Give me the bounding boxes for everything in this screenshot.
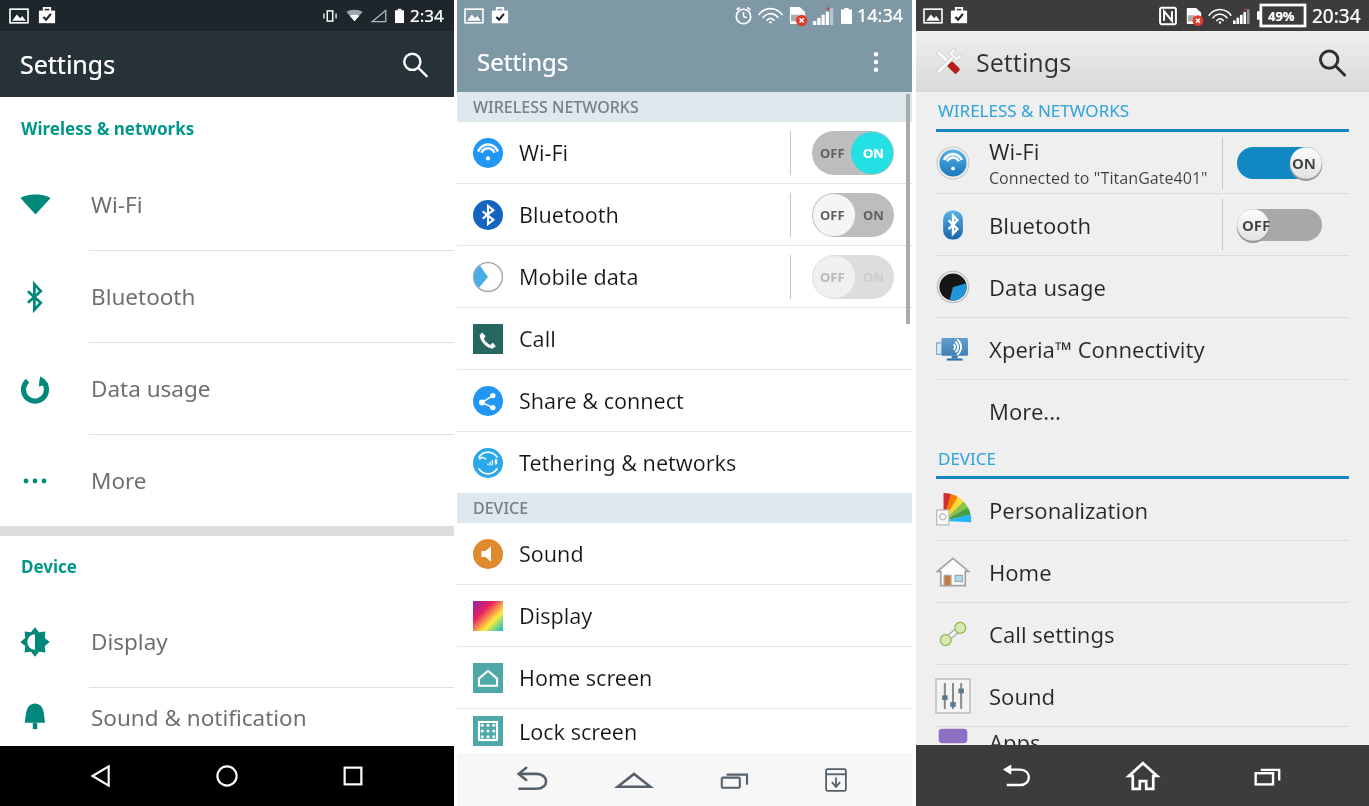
button[interactable]: More... [916, 380, 1369, 441]
button[interactable]: Toggle Mobile data [812, 255, 894, 299]
button[interactable]: Toggle Bluetooth [812, 193, 894, 237]
staticText: Mobile data [519, 262, 639, 291]
button[interactable]: Display [0, 596, 454, 687]
staticText: OFF [820, 268, 845, 286]
button[interactable]: Recents [1243, 751, 1293, 801]
staticText: More... [989, 396, 1062, 426]
staticText: 2:34 [410, 4, 444, 27]
staticText: OFF [1242, 215, 1271, 235]
staticText: Settings [20, 47, 116, 81]
button[interactable]: Back [76, 751, 126, 801]
staticText: ON [863, 144, 884, 162]
staticText: Home screen [519, 663, 653, 692]
button[interactable]: Bluetooth [916, 194, 1369, 255]
staticText: Call [519, 324, 556, 353]
button[interactable]: Data usage [916, 256, 1369, 317]
staticText: Sound [519, 539, 584, 568]
staticText: ON [1292, 153, 1317, 173]
staticText: ON [863, 268, 884, 286]
staticText: Sound & notification [91, 702, 307, 733]
staticText: OFF [820, 206, 845, 224]
staticText: Data usage [91, 373, 211, 404]
button[interactable]: Data usage [0, 343, 454, 434]
staticText: More [91, 465, 147, 496]
staticText: Wi-Fi [519, 138, 569, 167]
button[interactable]: More [0, 435, 454, 526]
button[interactable]: Back [508, 755, 558, 805]
button[interactable]: Toggle Bluetooth [1237, 209, 1322, 241]
button[interactable]: Sound [457, 523, 912, 584]
staticText: Device [21, 555, 77, 578]
button[interactable]: Personalization [916, 479, 1369, 540]
button[interactable]: Tethering & networks [457, 432, 912, 493]
staticText: ON [863, 206, 884, 224]
staticText: Display [91, 626, 168, 657]
button[interactable]: More options [856, 42, 896, 82]
staticText: Xperia™ Connectivity [989, 334, 1205, 364]
button[interactable]: Recents [328, 751, 378, 801]
staticText: Call settings [989, 619, 1115, 649]
staticText: Settings [976, 45, 1072, 79]
staticText: Personalization [989, 495, 1149, 525]
button[interactable]: Toggle Wi-Fi [1237, 147, 1322, 179]
staticText: Display [519, 601, 593, 630]
button[interactable]: Xperia™ Connectivity [916, 318, 1369, 379]
staticText: Apps [989, 727, 1041, 745]
staticText: Sound [989, 681, 1056, 711]
button[interactable]: Notifications [811, 755, 861, 805]
button[interactable]: Search [1309, 40, 1353, 84]
staticText: Home [989, 557, 1052, 587]
staticText: Settings [477, 45, 569, 78]
button[interactable]: Call settings [916, 603, 1369, 664]
button[interactable]: Home [916, 541, 1369, 602]
button[interactable]: Home screen [457, 647, 912, 708]
button[interactable]: Apps [916, 727, 1369, 745]
staticText: Lock screen [519, 717, 638, 746]
button[interactable]: Display [457, 585, 912, 646]
button[interactable]: Home [202, 751, 252, 801]
staticText: DEVICE [938, 447, 997, 470]
button[interactable]: Sound & notification [0, 688, 454, 746]
button[interactable]: Back [992, 751, 1042, 801]
staticText: Bluetooth [519, 200, 619, 229]
staticText: Data usage [989, 272, 1106, 302]
button[interactable]: Wi-Fi [0, 159, 454, 250]
staticText: 20:34 [1312, 3, 1361, 29]
staticText: Wi-Fi [91, 189, 143, 220]
button[interactable]: Home [609, 755, 659, 805]
button[interactable]: Bluetooth [457, 184, 912, 245]
staticText: OFF [820, 144, 845, 162]
staticText: Connected to "TitanGate401" [989, 167, 1208, 189]
button[interactable]: Sound [916, 665, 1369, 726]
button[interactable]: Lock screen [457, 709, 912, 753]
staticText: Wi-Fi [989, 136, 1040, 166]
button[interactable]: Recents [710, 755, 760, 805]
staticText: Tethering & networks [519, 448, 737, 477]
staticText: 49% [1268, 7, 1295, 25]
button[interactable]: Call [457, 308, 912, 369]
button[interactable]: Share & connect [457, 370, 912, 431]
staticText: Bluetooth [91, 281, 196, 312]
staticText: WIRELESS NETWORKS [473, 96, 639, 118]
button[interactable]: Home [1118, 751, 1168, 801]
button[interactable]: Toggle Wi-Fi [812, 131, 894, 175]
staticText: 14:34 [857, 3, 904, 28]
button[interactable]: Wi-Fi [457, 122, 912, 183]
button[interactable]: Search [392, 42, 436, 86]
button[interactable]: Bluetooth [0, 251, 454, 342]
button[interactable]: Mobile data [457, 246, 912, 307]
button[interactable]: Wi-Fi [916, 132, 1369, 193]
staticText: DEVICE [473, 497, 529, 519]
staticText: Wireless & networks [21, 117, 195, 140]
staticText: WIRELESS & NETWORKS [938, 99, 1130, 122]
staticText: Bluetooth [989, 210, 1092, 240]
staticText: Share & connect [519, 386, 684, 415]
